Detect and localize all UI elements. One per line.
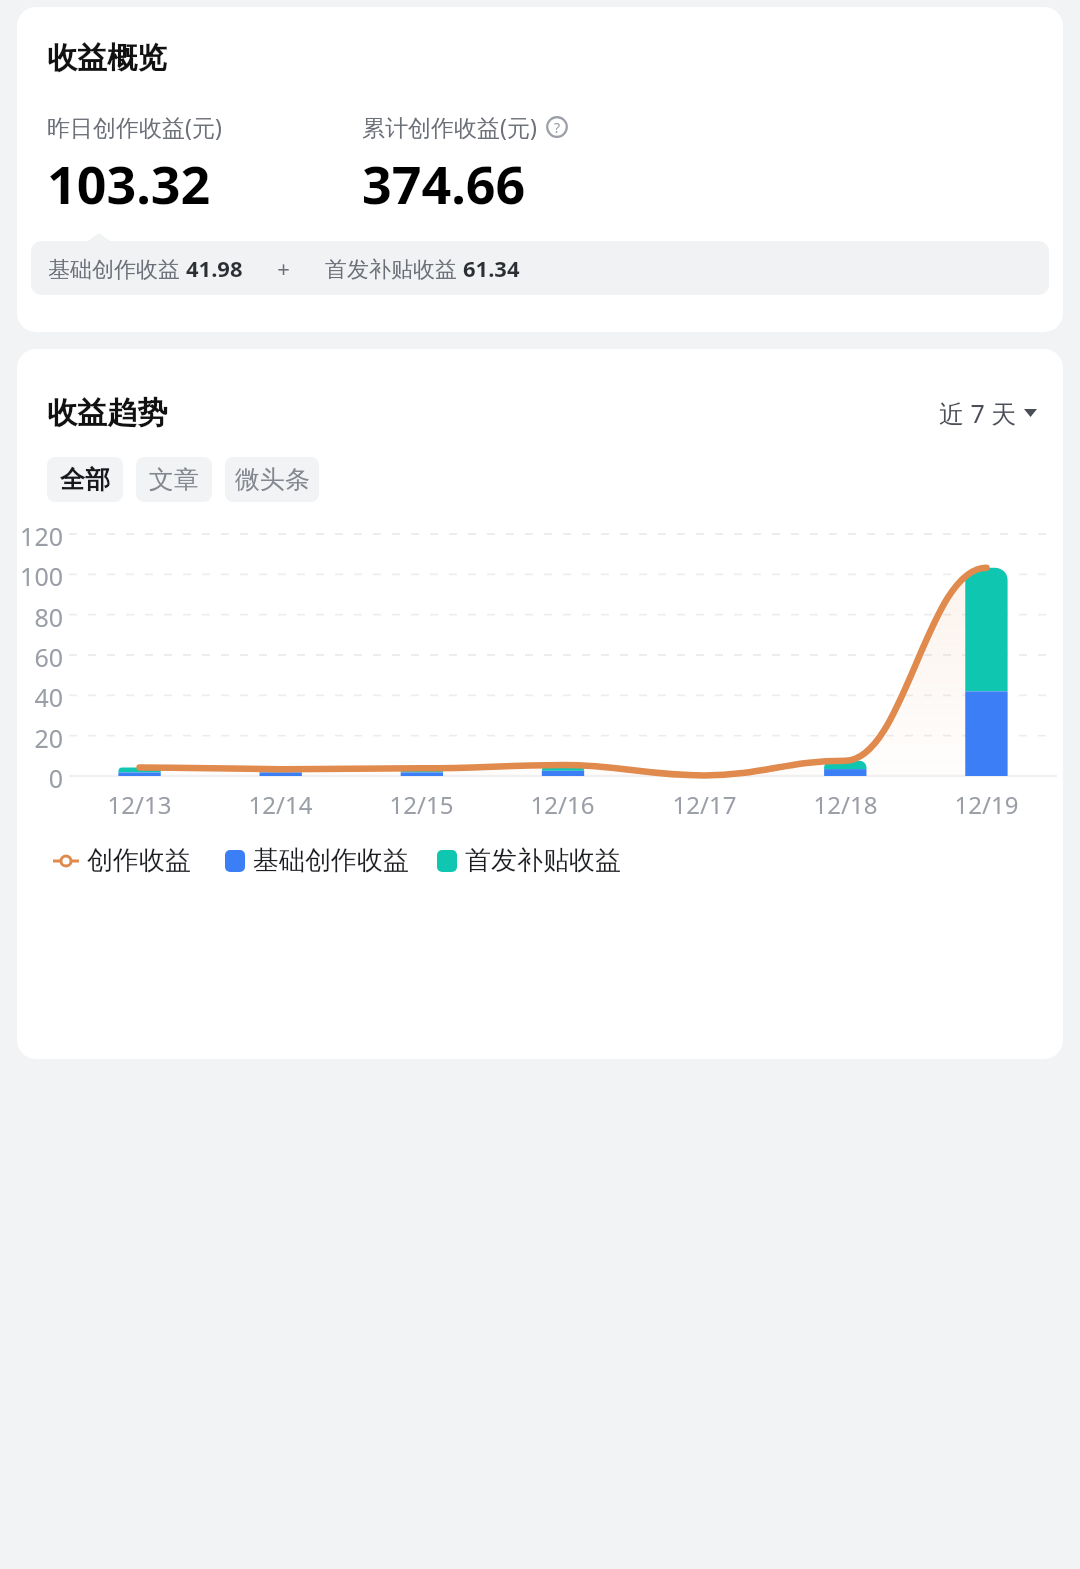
staticText: 41.98: [186, 253, 243, 283]
button[interactable]: 基础创作收益: [31, 241, 1049, 295]
staticText: 103.32: [47, 148, 211, 219]
staticText: 12/18: [775, 788, 916, 821]
staticText: 0: [17, 761, 63, 795]
staticText: 12/15: [351, 788, 492, 821]
staticText: 12/16: [492, 788, 633, 821]
button[interactable]: 累计创作收益说明: [546, 116, 568, 138]
staticText: 80: [17, 600, 63, 634]
staticText: 61.34: [463, 253, 520, 283]
staticText: 近 7 天: [939, 396, 1017, 430]
staticText: 40: [17, 680, 63, 714]
staticText: 12/17: [634, 788, 775, 821]
button[interactable]: 全部: [47, 457, 123, 502]
staticText: 20: [17, 721, 63, 755]
button[interactable]: 创作收益: [53, 844, 191, 877]
staticText: 全部: [60, 464, 110, 495]
staticText: 基础创作收益: [48, 253, 186, 283]
staticText: 基础创作收益: [253, 844, 409, 877]
button[interactable]: 文章: [136, 457, 212, 502]
button[interactable]: 微头条: [225, 457, 319, 502]
button[interactable]: 近 7 天: [939, 396, 1037, 430]
staticText: 60: [17, 640, 63, 674]
staticText: 创作收益: [87, 844, 191, 877]
staticText: 累计创作收益(元): [362, 111, 537, 142]
staticText: 昨日创作收益(元): [47, 111, 222, 142]
staticText: 收益趋势: [47, 394, 167, 432]
staticText: 100: [17, 559, 63, 593]
staticText: 首发补贴收益: [325, 253, 463, 283]
staticText: ?: [554, 118, 561, 137]
staticText: 文章: [149, 464, 199, 495]
staticText: 12/19: [916, 788, 1057, 821]
button[interactable]: 基础创作收益: [225, 844, 409, 877]
staticText: 12/13: [69, 788, 210, 821]
staticText: 12/14: [210, 788, 351, 821]
staticText: 120: [17, 519, 63, 553]
staticText: 收益概览: [47, 39, 167, 77]
staticText: +: [243, 253, 325, 283]
staticText: 首发补贴收益: [465, 844, 621, 877]
button[interactable]: 首发补贴收益: [437, 844, 621, 877]
staticText: 微头条: [235, 464, 310, 495]
staticText: 374.66: [362, 148, 526, 219]
